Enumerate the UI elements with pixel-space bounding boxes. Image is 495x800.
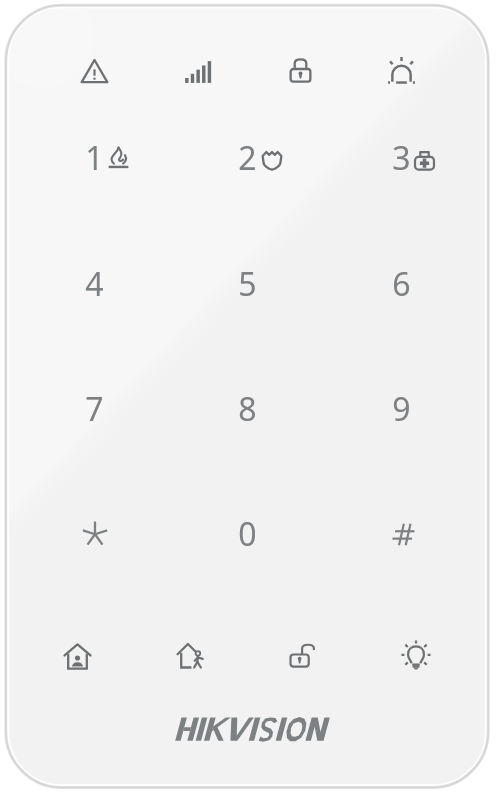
button[interactable]: 1 — [64, 132, 124, 184]
button[interactable]: Medical alarm — [414, 150, 435, 171]
button[interactable]: 5 — [217, 258, 277, 310]
staticText: 5 — [238, 262, 257, 306]
button[interactable]: 7 — [64, 383, 124, 435]
button[interactable]: Hash key — [392, 523, 415, 546]
staticText: 6 — [392, 262, 411, 306]
button[interactable]: Disarm — [290, 642, 316, 668]
staticText: 3 — [392, 136, 411, 180]
button[interactable]: Locked — [287, 57, 314, 84]
staticText: 1 — [85, 136, 104, 180]
button[interactable]: Fire alarm — [108, 147, 129, 168]
button[interactable]: 2 — [217, 132, 277, 184]
staticText: 9 — [392, 387, 411, 431]
button[interactable]: Light — [401, 640, 431, 670]
button[interactable]: 8 — [217, 383, 277, 435]
staticText: 8 — [238, 387, 257, 431]
button[interactable]: Warning — [81, 58, 108, 85]
button[interactable]: 3 — [371, 132, 431, 184]
staticText: 0 — [238, 512, 257, 556]
button[interactable]: 6 — [371, 258, 431, 310]
button[interactable]: Star key — [83, 523, 107, 547]
staticText: 2 — [238, 136, 257, 180]
other: HIKVISION — [172, 714, 332, 746]
button[interactable]: 4 — [64, 258, 124, 310]
button[interactable]: Away arming — [177, 642, 204, 669]
staticText: 7 — [85, 387, 104, 431]
button[interactable]: 0 — [217, 508, 277, 560]
button[interactable]: Stay arming — [64, 643, 91, 670]
button[interactable]: Police alarm — [261, 149, 283, 171]
button[interactable]: 9 — [371, 383, 431, 435]
staticText: 4 — [85, 262, 104, 306]
button[interactable]: Signal strength — [185, 59, 211, 85]
button[interactable]: Alarm — [387, 56, 416, 85]
